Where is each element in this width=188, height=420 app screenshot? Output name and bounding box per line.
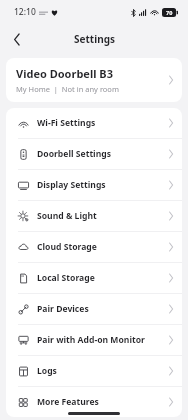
staticText: Sound & Light (37, 210, 169, 222)
staticText: Logs (37, 365, 169, 377)
button[interactable]: Pair Devices (6, 294, 182, 324)
staticText: Settings (74, 32, 115, 46)
staticText: 70 (166, 9, 173, 16)
button[interactable]: More Features (6, 387, 182, 417)
button[interactable]: Cloud Storage (6, 232, 182, 262)
staticText: My Home | Not in any room (16, 84, 119, 94)
staticText: Cloud Storage (37, 241, 169, 253)
button[interactable]: Wi-Fi Settings (6, 108, 182, 138)
button[interactable]: Sound & Light (6, 201, 182, 231)
button[interactable]: Back (6, 28, 28, 50)
staticText: Display Settings (37, 179, 169, 191)
staticText: Pair Devices (37, 303, 169, 315)
staticText: Pair with Add-on Monitor (37, 334, 169, 346)
button[interactable]: Doorbell Settings (6, 139, 182, 169)
button[interactable]: Pair with Add-on Monitor (6, 325, 182, 355)
staticText: Local Storage (37, 272, 169, 284)
staticText: More Features (37, 396, 169, 408)
staticText: Video Doorbell B3 (16, 66, 113, 81)
staticText: Wi-Fi Settings (37, 117, 169, 129)
staticText: 12:10 (14, 6, 36, 18)
staticText: Doorbell Settings (37, 148, 169, 160)
button[interactable]: Logs (6, 356, 182, 386)
button[interactable]: Local Storage (6, 263, 182, 293)
button[interactable]: Display Settings (6, 170, 182, 200)
button[interactable]: Video Doorbell B3 (6, 58, 182, 102)
